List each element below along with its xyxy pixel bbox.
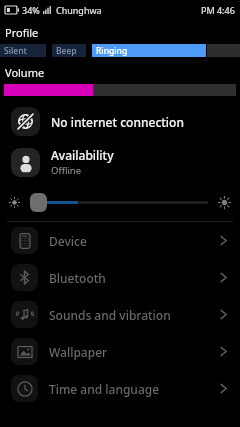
staticText: Volume bbox=[5, 65, 45, 80]
staticText: Silent bbox=[4, 45, 27, 57]
staticText: Sounds and vibration bbox=[49, 307, 171, 323]
staticText: Profile bbox=[5, 25, 39, 40]
button[interactable]: Availability bbox=[0, 141, 240, 183]
button[interactable]: Sounds and vibration bbox=[0, 296, 240, 333]
staticText: Chunghwa bbox=[56, 4, 102, 16]
button[interactable]: Silent bbox=[0, 44, 46, 57]
staticText: No internet connection bbox=[51, 114, 184, 130]
staticText: Offline bbox=[51, 164, 82, 177]
button[interactable]: Wallpaper bbox=[0, 333, 240, 370]
button[interactable]: No internet connection bbox=[0, 102, 240, 141]
staticText: 34% bbox=[22, 4, 40, 16]
button[interactable]: Brightness bbox=[0, 183, 240, 221]
staticText: PM 4:46 bbox=[201, 4, 235, 16]
button[interactable]: Time and language bbox=[0, 370, 240, 407]
button[interactable]: Beep bbox=[52, 44, 86, 57]
staticText: Availability bbox=[51, 147, 114, 163]
staticText: Bluetooth bbox=[49, 270, 106, 286]
button[interactable]: Device bbox=[0, 222, 240, 259]
button[interactable] bbox=[4, 84, 236, 96]
staticText: Ringing bbox=[96, 45, 128, 57]
button[interactable]: Ringing bbox=[92, 44, 206, 57]
button[interactable]: Bluetooth bbox=[0, 259, 240, 296]
staticText: Device bbox=[49, 233, 87, 249]
staticText: Beep bbox=[56, 45, 77, 57]
staticText: Wallpaper bbox=[49, 344, 108, 360]
staticText: Time and language bbox=[49, 381, 160, 397]
